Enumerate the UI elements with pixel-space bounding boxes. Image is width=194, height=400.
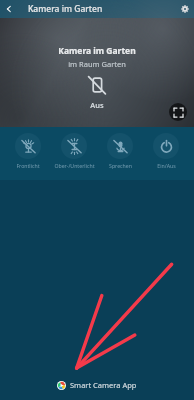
button[interactable]: Back	[0, 0, 18, 18]
button[interactable]: Settings	[176, 0, 194, 18]
staticText: Kamera im Garten	[58, 45, 136, 57]
button[interactable]: Sprechen	[98, 133, 142, 169]
staticText: Ober-/Unterlicht	[54, 162, 95, 169]
staticText: Kamera im Garten	[28, 3, 103, 15]
button[interactable]: Fullscreen	[169, 103, 187, 121]
staticText: im Raum Garten	[68, 59, 126, 69]
staticText: Frontlicht	[16, 162, 40, 169]
staticText: Sprechen	[109, 162, 132, 169]
staticText: Ein/Aus	[157, 162, 176, 169]
button[interactable]: Ein/Aus	[144, 133, 188, 169]
button[interactable]: Smart Camera App	[57, 380, 137, 390]
staticText: Aus	[90, 100, 104, 110]
button[interactable]: Frontlicht	[6, 133, 50, 169]
staticText: Smart Camera App	[70, 380, 137, 390]
button[interactable]: Ober-/Unterlicht	[52, 133, 96, 169]
